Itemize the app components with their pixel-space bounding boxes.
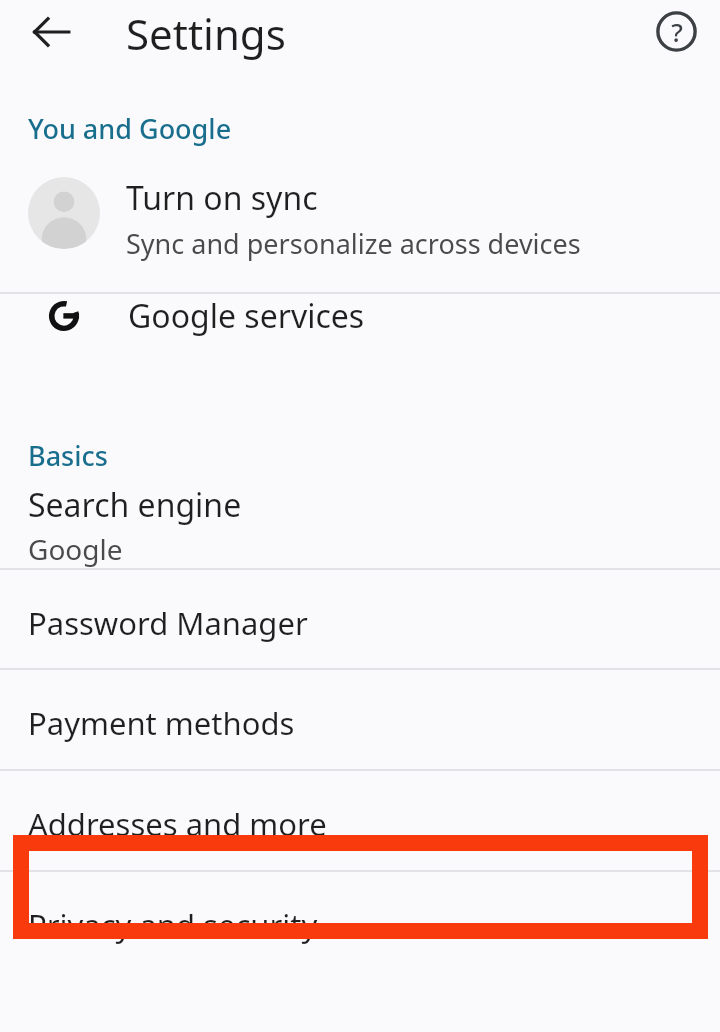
staticText: Addresses and more (28, 803, 327, 845)
staticText: Privacy and security (28, 904, 318, 946)
staticText: ? (671, 14, 683, 49)
staticText: Turn on sync (126, 176, 318, 220)
staticText: Basics (28, 437, 108, 474)
staticText: Google (28, 530, 123, 568)
button[interactable]: Turn on sync (0, 147, 720, 292)
staticText: You and Google (28, 110, 232, 147)
staticText: Password Manager (28, 602, 308, 644)
button[interactable]: Password Manager (0, 570, 720, 668)
staticText: Payment methods (28, 702, 295, 744)
button[interactable]: Back (17, 0, 85, 66)
button[interactable]: Addresses and more (0, 771, 720, 870)
button[interactable]: Google services (0, 294, 720, 401)
button[interactable]: Help (644, 0, 708, 63)
staticText: Search engine (28, 483, 242, 527)
staticText: Google services (128, 294, 365, 338)
staticText: Sync and personalize across devices (126, 225, 581, 262)
button[interactable]: Payment methods (0, 670, 720, 769)
staticText: Settings (126, 5, 286, 62)
button[interactable]: Search engine (0, 474, 720, 568)
button[interactable]: Privacy and security (0, 872, 720, 971)
